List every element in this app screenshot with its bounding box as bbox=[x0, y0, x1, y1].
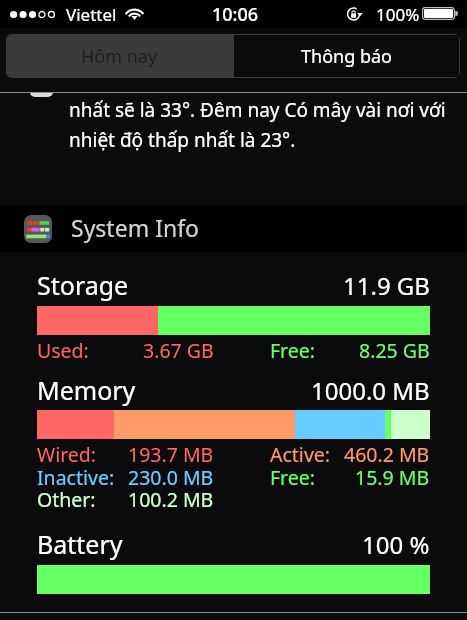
staticText: Other: bbox=[37, 486, 96, 513]
staticText: 11.9 GB bbox=[343, 269, 430, 302]
staticText: Memory bbox=[37, 373, 136, 407]
staticText: 3.67 GB bbox=[143, 337, 214, 364]
staticText: Viettel bbox=[66, 3, 117, 26]
staticText: Thông báo bbox=[301, 44, 392, 69]
button[interactable]: System Info bbox=[0, 205, 467, 252]
staticText: Used: bbox=[37, 337, 89, 364]
staticText: 1000.0 MB bbox=[311, 374, 430, 407]
staticText: Inactive: bbox=[37, 464, 115, 491]
staticText: Free: bbox=[270, 464, 316, 491]
staticText: System Info bbox=[71, 212, 199, 243]
staticText: 100 % bbox=[362, 528, 430, 561]
staticText: 100.2 MB bbox=[128, 486, 214, 513]
staticText: 193.7 MB bbox=[128, 441, 214, 468]
button[interactable]: Thông báo bbox=[233, 34, 460, 78]
staticText: 230.0 MB bbox=[128, 464, 214, 491]
staticText: 100% bbox=[376, 3, 420, 26]
staticText: Hôm nay bbox=[81, 44, 158, 69]
staticText: 15.9 MB bbox=[355, 464, 430, 491]
staticText: Free: bbox=[270, 337, 316, 364]
staticText: 8.25 GB bbox=[359, 337, 430, 364]
staticText: nhất sẽ là 33°. Đêm nay Có mây vài nơi v… bbox=[69, 97, 446, 123]
staticText: 460.2 MB bbox=[344, 441, 430, 468]
staticText: Storage bbox=[37, 268, 129, 302]
staticText: Wired: bbox=[37, 441, 97, 468]
other: Battery 100 percent bbox=[422, 7, 459, 20]
staticText: nhiệt độ thấp nhất là 23°. bbox=[69, 127, 296, 153]
staticText: Active: bbox=[270, 441, 331, 468]
staticText: 10:06 bbox=[212, 2, 259, 27]
staticText: Battery bbox=[37, 527, 123, 561]
other: Rotation lock bbox=[347, 6, 363, 22]
button[interactable]: Hôm nay bbox=[6, 34, 233, 78]
